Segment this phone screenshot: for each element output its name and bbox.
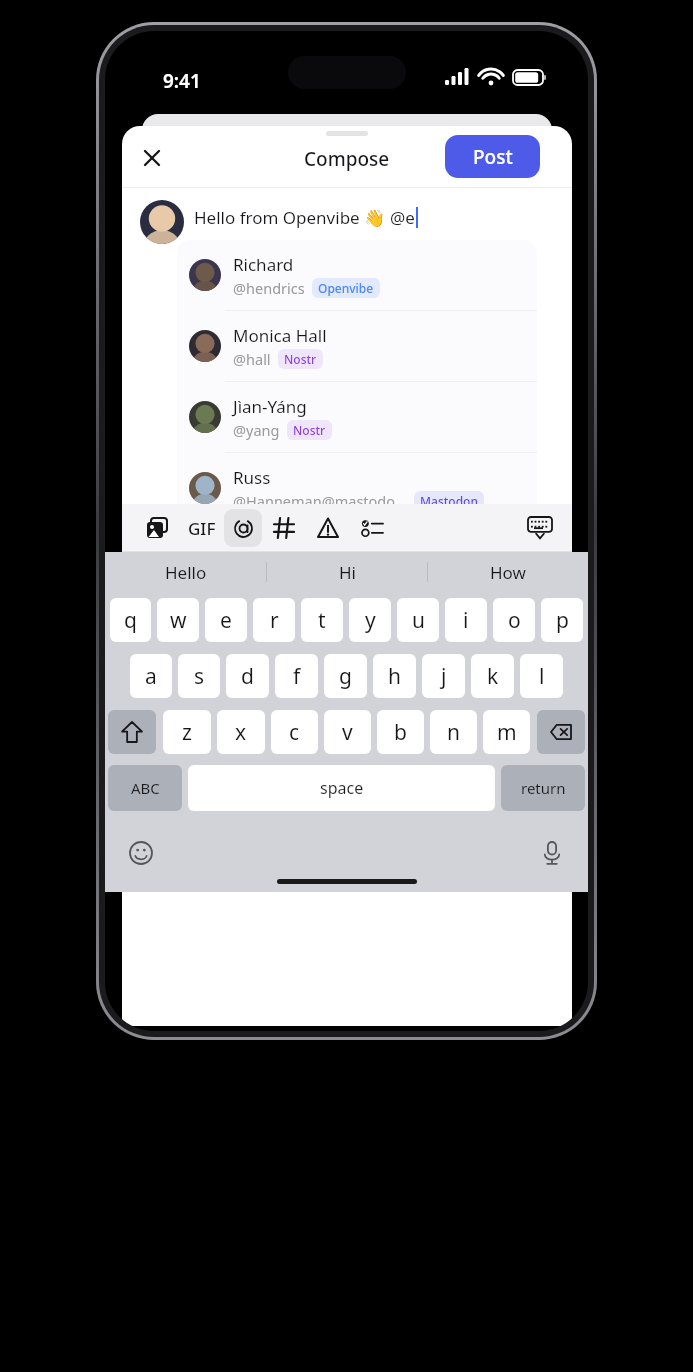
staticText: Russ xyxy=(233,466,271,489)
staticText: e xyxy=(220,606,232,635)
button[interactable]: Hi xyxy=(267,552,427,592)
staticText: Post xyxy=(473,144,513,170)
staticText: m xyxy=(497,718,517,747)
button[interactable]: Dictation xyxy=(534,835,570,871)
staticText: ABC xyxy=(131,778,160,798)
button[interactable]: Close xyxy=(132,138,172,178)
staticText: b xyxy=(394,718,407,747)
button[interactable]: a xyxy=(130,654,172,698)
staticText: space xyxy=(320,777,364,799)
staticText: How xyxy=(490,561,526,584)
button[interactable]: Russ xyxy=(177,453,537,523)
button[interactable]: Mention xyxy=(224,509,262,547)
button[interactable]: Hello xyxy=(105,552,266,592)
staticText: x xyxy=(235,718,247,747)
staticText: Hi xyxy=(339,561,356,584)
button[interactable]: t xyxy=(301,598,343,642)
staticText: p xyxy=(556,606,569,635)
staticText: Compose xyxy=(304,146,390,172)
staticText: v xyxy=(342,718,353,747)
staticText: g xyxy=(339,662,352,691)
staticText: u xyxy=(412,606,425,635)
button[interactable]: h xyxy=(373,654,416,698)
staticText: Jìan-Yáng xyxy=(233,395,307,418)
staticText: f xyxy=(293,662,301,691)
button[interactable]: q xyxy=(110,598,151,642)
button[interactable]: m xyxy=(483,710,530,754)
staticText: w xyxy=(170,606,187,635)
button[interactable]: Monica Hall xyxy=(177,311,537,381)
staticText: Erlich Bachman xyxy=(233,536,357,559)
button[interactable]: n xyxy=(430,710,477,754)
staticText: Richard xyxy=(233,253,294,276)
button[interactable]: u xyxy=(397,598,439,642)
button[interactable]: Emoji xyxy=(123,835,159,871)
button[interactable]: e xyxy=(205,598,247,642)
staticText: Nostr xyxy=(293,422,326,438)
button[interactable]: GIF xyxy=(180,506,224,550)
button[interactable]: l xyxy=(520,654,563,698)
button[interactable]: f xyxy=(275,654,318,698)
staticText: Hello from Openvibe 👋 xyxy=(194,206,390,229)
button[interactable]: s xyxy=(178,654,220,698)
staticText: GIF xyxy=(188,517,216,540)
button[interactable]: w xyxy=(157,598,199,642)
button[interactable]: r xyxy=(253,598,295,642)
staticText: z xyxy=(182,718,192,747)
button[interactable]: Richard xyxy=(177,240,537,310)
staticText: a xyxy=(145,662,157,691)
button[interactable]: x xyxy=(217,710,265,754)
staticText: @Hanneman@mastodo… xyxy=(233,491,407,511)
button[interactable]: c xyxy=(271,710,318,754)
staticText: r xyxy=(270,606,279,635)
button[interactable]: i xyxy=(445,598,487,642)
button[interactable]: space xyxy=(188,765,495,811)
staticText: o xyxy=(508,606,521,635)
button[interactable]: ABC xyxy=(108,765,182,811)
button[interactable]: y xyxy=(349,598,391,642)
staticText: Openvibe xyxy=(318,280,374,296)
staticText: i xyxy=(463,606,469,635)
staticText: @e xyxy=(390,206,415,229)
button[interactable]: Poll xyxy=(350,506,394,550)
staticText: Bluesky xyxy=(415,563,460,579)
button[interactable]: j xyxy=(422,654,465,698)
staticText: @hall xyxy=(233,349,271,369)
button[interactable]: How xyxy=(428,552,588,592)
button[interactable]: Shift xyxy=(108,710,156,754)
button[interactable]: z xyxy=(163,710,211,754)
button[interactable]: return xyxy=(501,765,585,811)
button[interactable]: Jìan-Yáng xyxy=(177,382,537,452)
button[interactable]: o xyxy=(493,598,535,642)
staticText: s xyxy=(194,662,205,691)
button[interactable]: b xyxy=(377,710,424,754)
button[interactable]: Hashtag xyxy=(262,506,306,550)
button[interactable]: Delete xyxy=(537,710,585,754)
staticText: t xyxy=(318,606,326,635)
button[interactable]: v xyxy=(324,710,371,754)
staticText: d xyxy=(241,662,254,691)
button[interactable]: Add photo xyxy=(136,506,180,550)
staticText: 9:41 xyxy=(163,68,201,94)
staticText: Hello xyxy=(165,561,207,584)
staticText: Nostr xyxy=(284,351,317,367)
button[interactable]: Erlich Bachman xyxy=(177,524,537,593)
staticText: k xyxy=(487,662,499,691)
staticText: q xyxy=(124,606,137,635)
staticText: n xyxy=(447,718,460,747)
staticText: c xyxy=(289,718,300,747)
staticText: y xyxy=(365,606,376,635)
button[interactable]: Hide keyboard xyxy=(516,504,564,552)
button[interactable]: g xyxy=(324,654,367,698)
button[interactable]: Content warning xyxy=(306,506,350,550)
button[interactable]: p xyxy=(541,598,583,642)
staticText: @hendrics xyxy=(233,278,305,298)
button[interactable]: d xyxy=(226,654,269,698)
staticText: Monica Hall xyxy=(233,324,327,347)
staticText: return xyxy=(521,778,566,798)
button[interactable]: k xyxy=(471,654,514,698)
staticText: j xyxy=(441,662,447,691)
staticText: l xyxy=(539,662,545,691)
staticText: h xyxy=(388,662,401,691)
button[interactable]: Post xyxy=(445,135,540,178)
